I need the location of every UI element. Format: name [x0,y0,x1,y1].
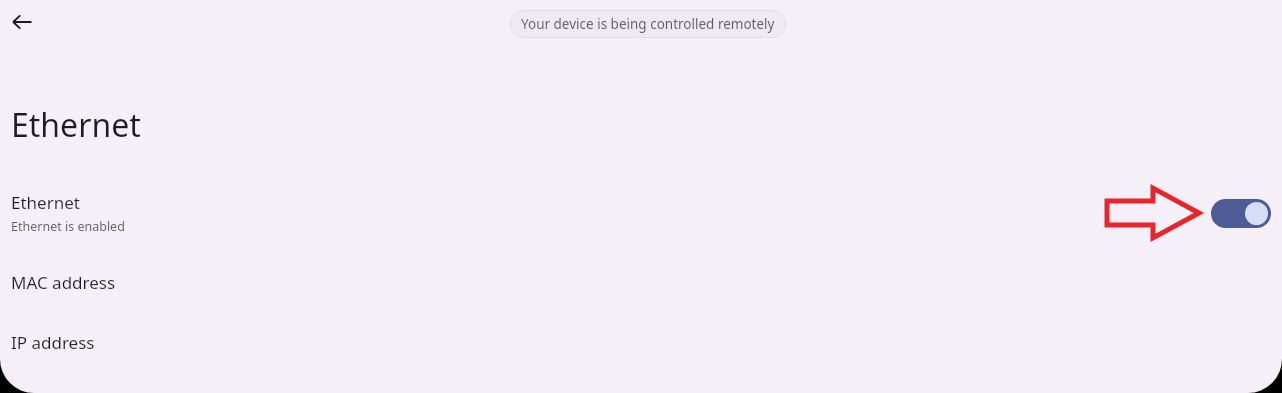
staticText: Ethernet [11,103,141,147]
button[interactable]: Ethernet toggle [1211,199,1271,228]
button[interactable]: Back [4,4,40,40]
staticText: IP address [11,331,95,354]
button[interactable]: Ethernet [0,180,1282,246]
staticText: Your device is being controlled remotely [521,15,775,33]
staticText: Ethernet is enabled [11,218,125,235]
staticText: MAC address [11,271,116,294]
staticText: Ethernet [11,191,80,214]
button[interactable]: Your device is being controlled remotely [510,10,786,38]
